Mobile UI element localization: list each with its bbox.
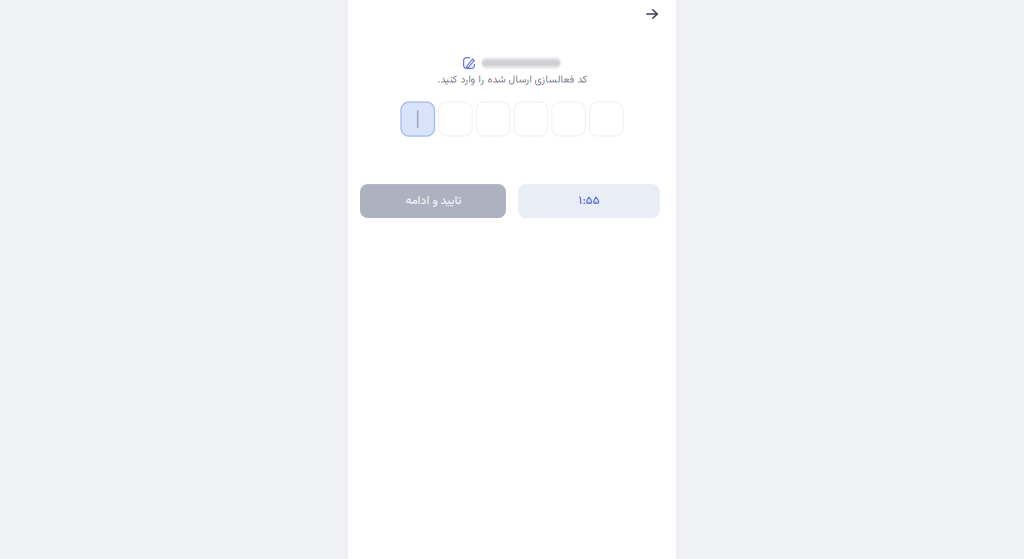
button[interactable]: Code digit 1 <box>401 102 434 136</box>
button[interactable]: Back <box>637 1 667 27</box>
staticText: ۱:۵۵ <box>578 192 599 210</box>
button[interactable]: Code digit 3 <box>476 102 510 136</box>
button[interactable]: Edit phone number <box>462 55 561 71</box>
staticText: تایید و ادامه <box>405 192 461 210</box>
staticText: کد فعالسازی ارسال شده را وارد کنید. <box>437 72 587 88</box>
button[interactable]: Code digit 4 <box>514 102 548 136</box>
button[interactable]: ۱:۵۵ <box>518 184 660 218</box>
button[interactable]: تایید و ادامه <box>360 184 506 218</box>
